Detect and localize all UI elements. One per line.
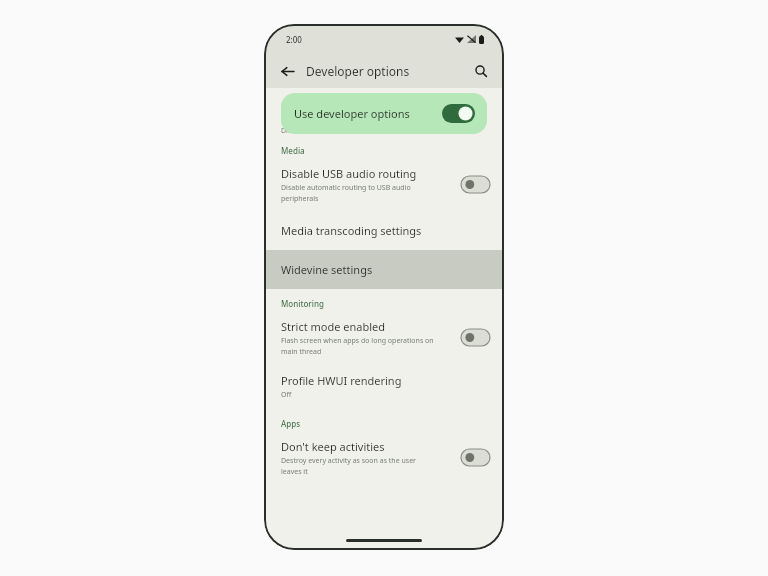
button[interactable]: Profile HWUI rendering [264,364,504,409]
staticText: 2:00 [286,34,302,45]
staticText: Media transcoding settings [281,223,422,238]
staticText: Monitoring [281,298,324,309]
staticText: Off [281,390,292,400]
button[interactable]: Media transcoding settings [264,211,504,250]
button[interactable]: Disable USB audio routing [264,160,504,211]
staticText: Apps [281,418,301,429]
staticText: Flash screen when apps do long operation… [281,336,434,356]
staticText: Strict mode enabled [281,319,386,334]
button[interactable]: Strict mode enabled [264,313,504,364]
staticText: Developer options [306,63,410,79]
button[interactable]: Use developer options [281,93,487,134]
staticText: Disable USB audio routing [281,166,417,181]
staticText: Disabled [281,126,310,136]
button[interactable]: Don't keep activities [264,433,504,484]
staticText: Don't keep activities [281,439,385,454]
staticText: Media [281,145,305,156]
staticText: Profile HWUI rendering [281,373,402,388]
staticText: Use developer options [294,106,410,121]
staticText: Widevine settings [281,262,373,277]
staticText: Destroy every activity as soon as the us… [281,456,416,476]
staticText: Disable automatic routing to USB audio p… [281,183,411,203]
button[interactable]: Back [272,56,302,86]
button[interactable]: Widevine settings [264,250,504,289]
button[interactable]: Search [467,57,495,85]
